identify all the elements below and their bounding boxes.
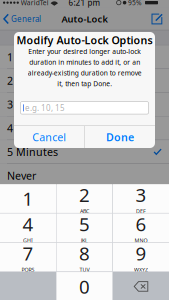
staticText: 9 (135, 241, 146, 266)
button[interactable]: General (0, 8, 45, 30)
button[interactable]: 3 (113, 184, 169, 213)
staticText: 2 Minutes (7, 74, 58, 88)
button[interactable]: Done (85, 126, 155, 148)
staticText: 6:21 pm (68, 0, 100, 8)
staticText: General (11, 14, 41, 24)
staticText: 5 Minutes (7, 145, 58, 159)
staticText: 6 (135, 212, 146, 236)
staticText: PQRS (21, 266, 34, 273)
button[interactable]: Never (0, 164, 169, 187)
staticText: TUV (79, 266, 89, 273)
button[interactable]: 4 Minutes (0, 116, 169, 140)
staticText: 4 (22, 212, 33, 236)
staticText: Auto-Lock (61, 13, 107, 25)
button[interactable]: 9 (113, 243, 169, 272)
staticText: 8 (79, 241, 90, 266)
staticText: Never (7, 168, 36, 183)
button[interactable]: Delete (113, 272, 169, 300)
button[interactable]: 2 Minutes (0, 69, 169, 92)
button[interactable]: 5 Minutes (0, 140, 169, 163)
staticText: Cancel (32, 130, 66, 144)
staticText: MNO (134, 237, 147, 244)
staticText: Done (106, 130, 134, 144)
staticText: e.g. 10, 15 (25, 103, 65, 113)
button[interactable]: 5 (56, 213, 112, 242)
staticText: 5 (79, 212, 90, 236)
button[interactable]: 1 (0, 184, 56, 213)
staticText: 95% (128, 0, 142, 7)
staticText: GHI (23, 237, 33, 244)
button[interactable]: 1 Minute (0, 45, 169, 69)
staticText: JKL (81, 237, 88, 244)
button[interactable]: 3 Minutes (0, 93, 169, 116)
staticText: ABC (80, 208, 89, 215)
staticText: 3 (135, 182, 146, 207)
staticText: DEF (136, 208, 146, 215)
button[interactable]: 7 (0, 243, 56, 272)
button[interactable]: Cancel (14, 126, 84, 148)
staticText: 3 Minutes (7, 97, 58, 111)
button[interactable]: 8 (56, 243, 112, 272)
staticText: 4 Minutes (7, 121, 58, 135)
staticText: 1 Minute (7, 50, 53, 64)
staticText: 1 (22, 186, 33, 211)
button[interactable]: 6 (113, 213, 169, 242)
staticText: Modify Auto-Lock Options (16, 33, 152, 47)
staticText: 2 (79, 182, 90, 207)
staticText: Enter your desired longer auto-lock dura… (27, 47, 141, 88)
button[interactable]: Compose (146, 8, 169, 30)
staticText: 7 (22, 241, 33, 266)
button[interactable]: 4 (0, 213, 56, 242)
staticText: WaridTel (21, 0, 49, 7)
staticText: WXYZ (134, 266, 148, 273)
button[interactable]: 2 (56, 184, 112, 213)
button[interactable]: 0 (56, 272, 112, 300)
staticText: 0 (79, 274, 90, 299)
